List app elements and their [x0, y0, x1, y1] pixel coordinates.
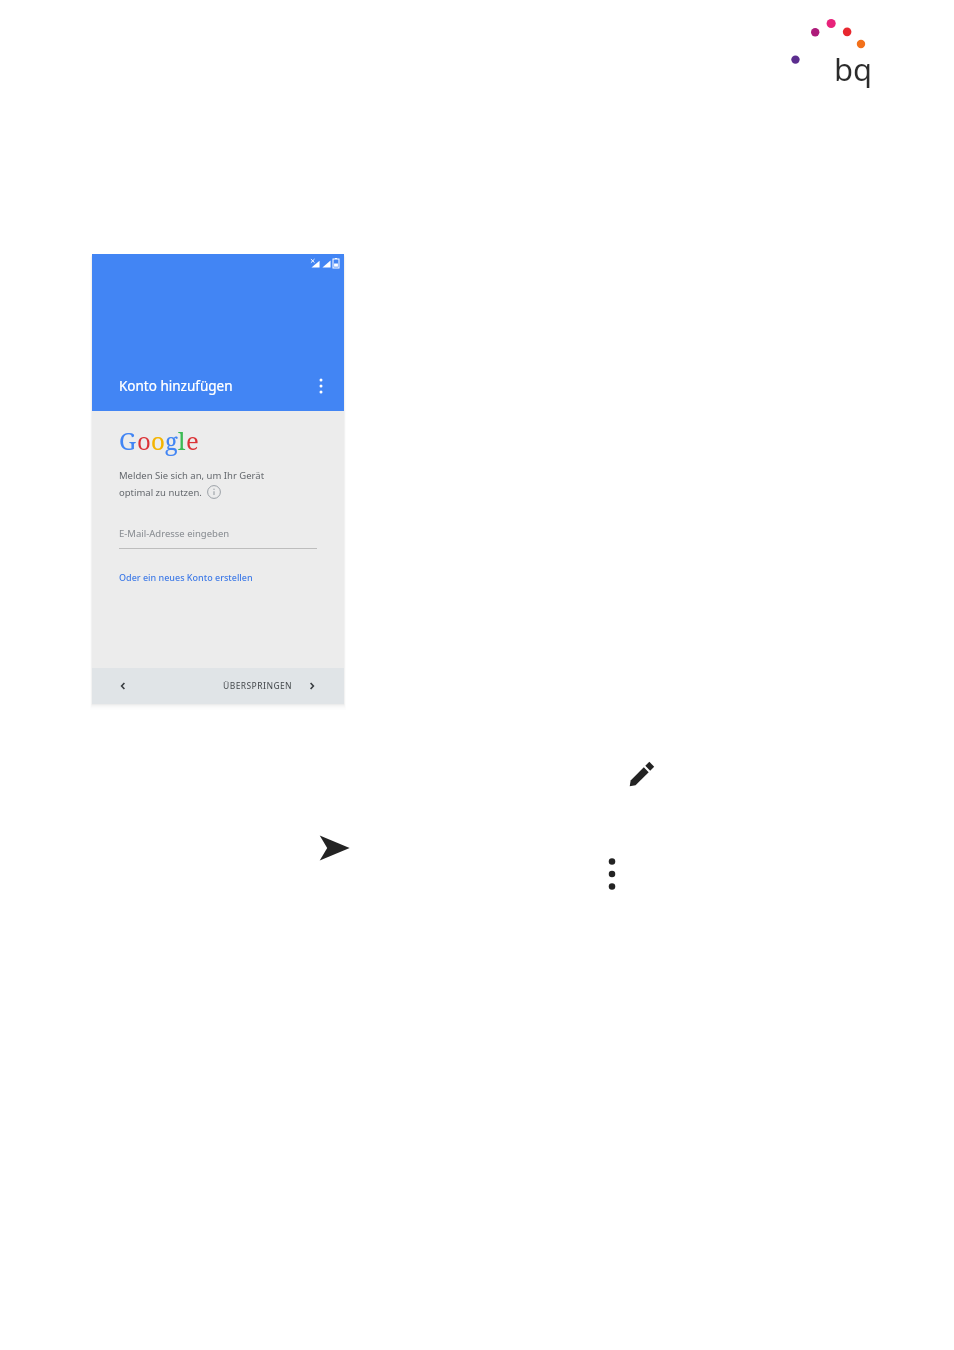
staticText: bq	[834, 48, 873, 90]
staticText: optimal zu nutzen.	[119, 486, 202, 499]
staticText: o	[137, 424, 151, 457]
button[interactable]: Weitere Optionen	[308, 373, 334, 399]
button[interactable]: ÜBERSPRINGEN	[223, 676, 322, 696]
staticText: e	[186, 424, 199, 457]
staticText: E-Mail-Adresse eingeben	[119, 527, 230, 540]
button[interactable]: Bearbeiten	[622, 754, 662, 794]
button[interactable]: Senden	[312, 826, 356, 870]
staticText: G	[119, 424, 137, 457]
button[interactable]: Oder ein neues Konto erstellen	[119, 571, 253, 583]
button[interactable]: E-Mail-Adresse eingeben	[119, 527, 317, 549]
button[interactable]: Zurück	[112, 675, 134, 697]
staticText: Melden Sie sich an, um Ihr Gerät	[119, 469, 265, 482]
staticText: l	[178, 424, 186, 457]
staticText: Oder ein neues Konto erstellen	[119, 571, 253, 583]
button[interactable]: Info	[207, 485, 221, 499]
button[interactable]: Weitere Optionen	[596, 852, 628, 896]
staticText: Konto hinzufügen	[119, 377, 233, 395]
staticText: g	[165, 424, 178, 457]
staticText: ÜBERSPRINGEN	[223, 680, 293, 692]
staticText: o	[151, 424, 165, 457]
